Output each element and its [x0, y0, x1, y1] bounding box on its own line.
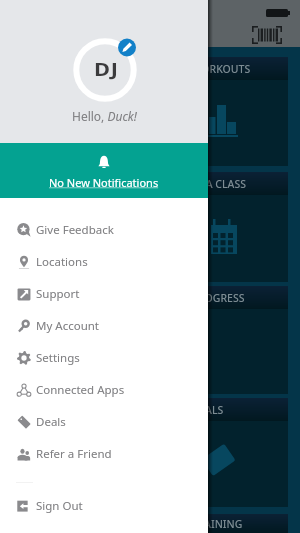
button[interactable]: MY WORKOUTS — [12, 57, 288, 166]
button[interactable]: Locations — [0, 246, 208, 278]
staticText: Locations — [36, 254, 88, 270]
staticText: My Account — [36, 318, 99, 334]
button[interactable]: Give Feedback — [0, 214, 208, 246]
button[interactable]: Deals — [0, 406, 208, 438]
button[interactable]: Sign Out — [0, 490, 208, 522]
button[interactable]: MY DEALS — [12, 398, 288, 507]
staticText: Sign Out — [36, 498, 83, 514]
button[interactable]: MY PROGRESS — [12, 286, 288, 394]
staticText: MY DEALS — [173, 403, 224, 417]
staticText: Hello, Duck! — [72, 108, 137, 124]
staticText: Settings — [36, 350, 80, 366]
button[interactable]: BOOK A CLASS — [12, 172, 288, 282]
staticText: DJ — [94, 57, 119, 81]
button[interactable]: No New Notifications — [0, 143, 208, 198]
staticText: Give Feedback — [36, 222, 114, 238]
staticText: MY WORKOUTS — [173, 62, 251, 76]
staticText: MY PROGRESS — [173, 291, 245, 305]
staticText: MY TRAINING — [173, 517, 243, 531]
staticText: Support — [36, 286, 80, 302]
button[interactable]: MY TRAINING — [12, 514, 288, 533]
button[interactable]: Connected Apps — [0, 374, 208, 406]
staticText: No New Notifications — [49, 175, 159, 190]
staticText: Deals — [36, 414, 66, 430]
button[interactable]: Settings — [0, 342, 208, 374]
staticText: Connected Apps — [36, 382, 125, 398]
button[interactable]: Support — [0, 278, 208, 310]
staticText: BOOK A CLASS — [173, 177, 247, 191]
button[interactable]: My Account — [0, 310, 208, 342]
staticText: Refer a Friend — [36, 446, 112, 462]
button[interactable]: Refer a Friend — [0, 438, 208, 470]
